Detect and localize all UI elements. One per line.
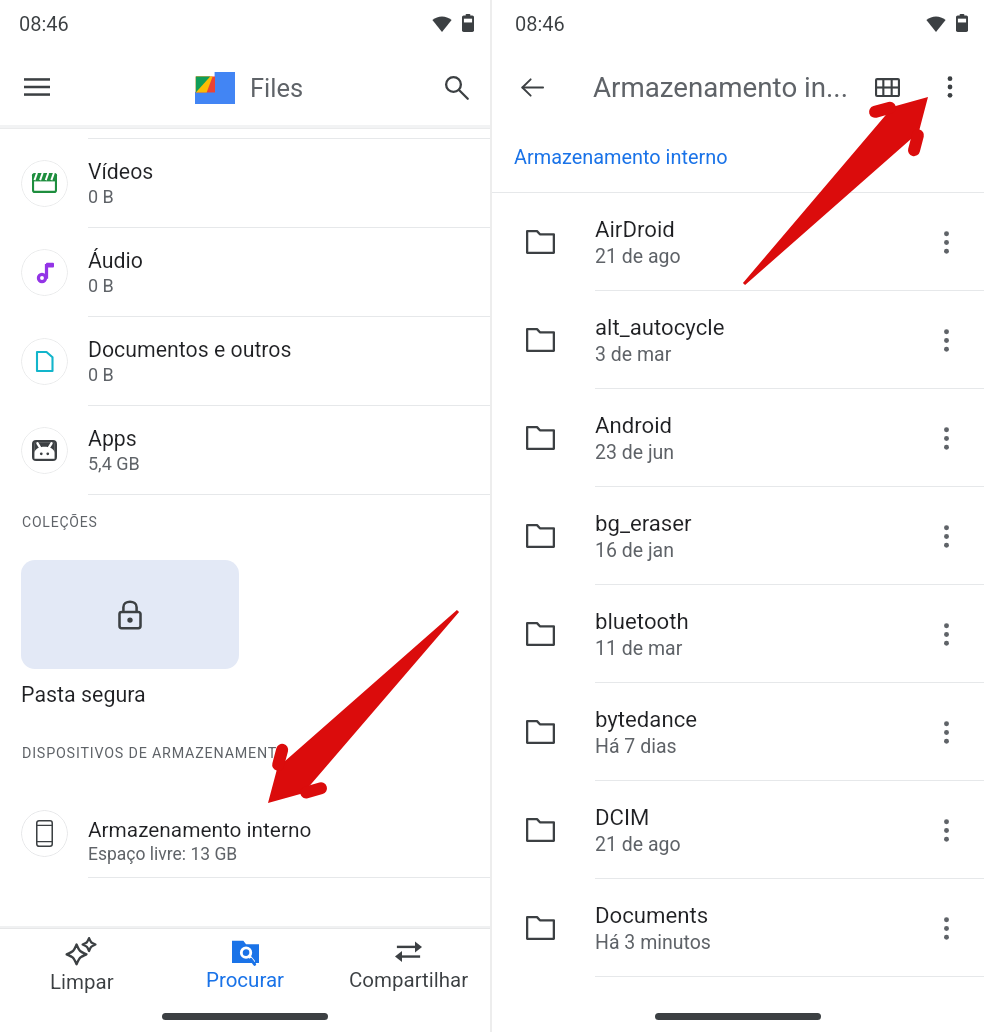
staticText: Procurar <box>206 968 285 992</box>
button[interactable]: Limpar <box>0 927 164 1004</box>
staticText: Vídeos <box>88 159 154 184</box>
staticText: Há 7 dias <box>595 735 677 758</box>
staticText: Documentos e outros <box>88 337 292 362</box>
button[interactable]: More options for bytedance <box>926 712 966 752</box>
staticText: 16 de jan <box>595 539 674 562</box>
button[interactable]: Back <box>510 65 554 109</box>
staticText: 0 B <box>88 186 114 207</box>
button[interactable]: More options for bluetooth <box>926 614 966 654</box>
staticText: 21 de ago <box>595 245 681 268</box>
button[interactable]: Pasta segura <box>21 560 239 669</box>
staticText: 0 B <box>88 275 114 296</box>
staticText: Documents <box>595 902 709 928</box>
button[interactable]: More options for Documents <box>926 908 966 948</box>
button[interactable]: Armazenamento interno <box>514 146 728 169</box>
staticText: DISPOSITIVOS DE ARMAZENAMENTO <box>22 745 288 762</box>
staticText: DCIM <box>595 804 650 830</box>
button[interactable]: bluetooth <box>492 585 984 682</box>
staticText: 11 de mar <box>595 637 683 660</box>
staticText: 23 de jun <box>595 441 675 464</box>
staticText: 08:46 <box>19 12 69 35</box>
button[interactable]: alt_autocycle <box>492 291 984 388</box>
staticText: Espaço livre: 13 GB <box>88 844 238 865</box>
staticText: 21 de ago <box>595 833 681 856</box>
button[interactable]: AirDroid <box>492 193 984 290</box>
staticText: COLEÇÕES <box>22 514 98 530</box>
button[interactable]: More options for bg_eraser <box>926 516 966 556</box>
button[interactable]: Apps <box>0 406 490 494</box>
button[interactable]: Vídeos <box>0 139 490 227</box>
staticText: Áudio <box>88 248 143 273</box>
button[interactable]: Compartilhar <box>327 927 490 1004</box>
staticText: 3 de mar <box>595 343 672 366</box>
button[interactable]: More options for Android <box>926 418 966 458</box>
button[interactable]: DCIM <box>492 781 984 878</box>
staticText: Android <box>595 412 673 438</box>
staticText: Compartilhar <box>349 968 469 992</box>
button[interactable]: bytedance <box>492 683 984 780</box>
button[interactable]: More options for AirDroid <box>926 222 966 262</box>
staticText: bytedance <box>595 706 698 732</box>
staticText: 5,4 GB <box>88 453 140 474</box>
staticText: Há 3 minutos <box>595 931 711 954</box>
staticText: bg_eraser <box>595 510 692 536</box>
staticText: 08:46 <box>515 12 565 35</box>
staticText: Pasta segura <box>21 682 146 707</box>
staticText: 0 B <box>88 364 114 385</box>
button[interactable]: Documents <box>492 879 984 976</box>
button[interactable]: Áudio <box>0 228 490 316</box>
button[interactable]: bg_eraser <box>492 487 984 584</box>
staticText: Limpar <box>50 970 114 994</box>
button[interactable]: Procurar <box>164 927 327 1004</box>
button[interactable]: Search <box>432 63 480 111</box>
staticText: Armazenamento interno <box>88 818 312 842</box>
button[interactable]: More options <box>928 65 972 109</box>
staticText: AirDroid <box>595 216 675 242</box>
button[interactable]: Android <box>492 389 984 486</box>
button[interactable]: More options for DCIM <box>926 810 966 850</box>
button[interactable]: Documentos e outros <box>0 317 490 405</box>
button[interactable]: More options for alt_autocycle <box>926 320 966 360</box>
staticText: Armazenamento in... <box>593 71 848 103</box>
button[interactable]: Grid view <box>865 65 909 109</box>
staticText: alt_autocycle <box>595 314 725 340</box>
staticText: Apps <box>88 426 137 451</box>
staticText: Files <box>250 73 304 103</box>
button[interactable]: Menu <box>13 63 61 111</box>
button[interactable]: Armazenamento interno <box>0 789 490 877</box>
staticText: bluetooth <box>595 608 689 634</box>
